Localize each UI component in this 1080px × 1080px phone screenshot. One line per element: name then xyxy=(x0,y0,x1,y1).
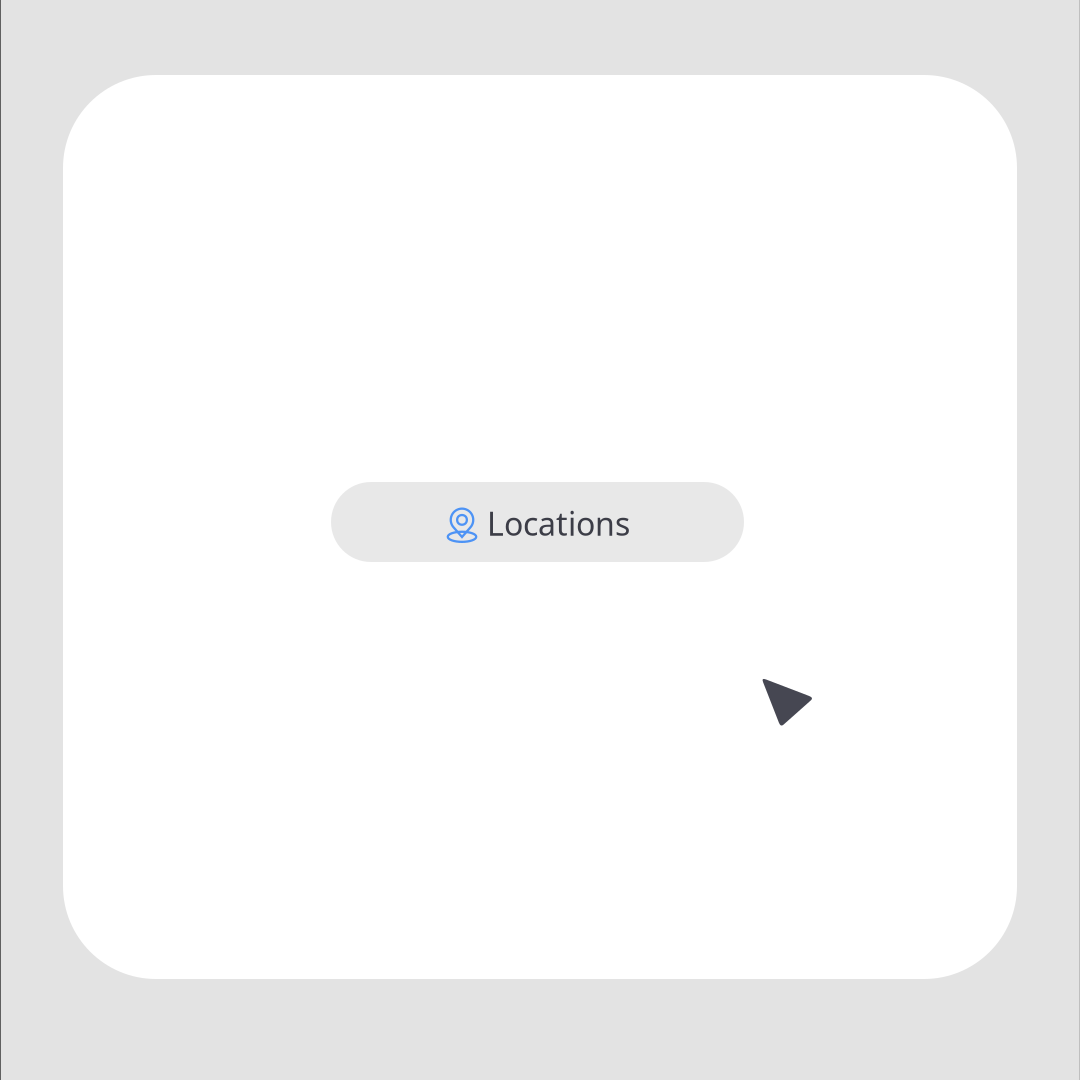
button[interactable]: Locations xyxy=(331,482,744,562)
staticText: Locations xyxy=(487,502,630,544)
